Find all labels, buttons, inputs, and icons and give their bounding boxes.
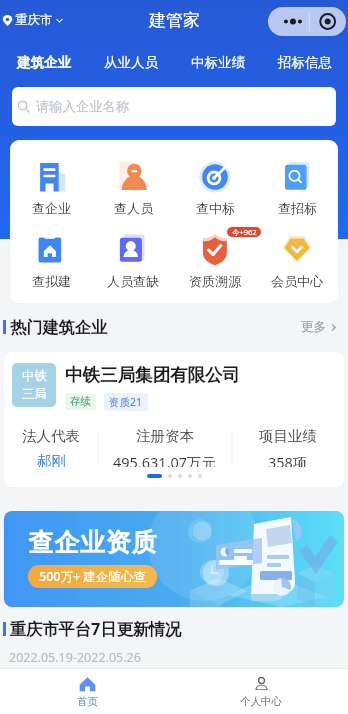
button[interactable]: 中铁 bbox=[4, 352, 344, 487]
button[interactable]: 重庆市 bbox=[2, 12, 63, 28]
staticText: 重庆市平台7日更新情况 bbox=[10, 618, 182, 640]
staticText: 重庆市 bbox=[15, 12, 53, 28]
button[interactable]: 更多 bbox=[301, 319, 338, 335]
staticText: 查企业 bbox=[32, 200, 71, 216]
button[interactable]: 查企业资质 bbox=[4, 511, 344, 607]
staticText: 500万+ 建企随心查 bbox=[39, 568, 146, 585]
button[interactable]: More options bbox=[268, 7, 346, 36]
staticText: 2022.05.19-2022.05.26 bbox=[9, 649, 141, 666]
staticText: 个人中心 bbox=[240, 695, 282, 708]
staticText: 资质溯源 bbox=[189, 273, 241, 289]
staticText: 今+962 bbox=[232, 227, 257, 237]
button[interactable]: 查拟建 bbox=[10, 234, 92, 289]
staticText: 495,631.07万元 bbox=[113, 452, 217, 467]
staticText: 从业人员 bbox=[104, 54, 158, 71]
button[interactable]: 今+962 bbox=[174, 234, 256, 289]
staticText: 查中标 bbox=[196, 200, 235, 216]
button[interactable]: 招标信息 bbox=[261, 40, 348, 84]
staticText: 中铁 bbox=[22, 368, 47, 384]
button[interactable]: 建筑企业 bbox=[0, 40, 87, 84]
staticText: 中铁三局集团有限公司 bbox=[65, 364, 240, 386]
button[interactable]: 中标业绩 bbox=[174, 40, 261, 84]
staticText: 热门建筑企业 bbox=[10, 317, 108, 337]
staticText: 查企业资质 bbox=[28, 527, 157, 558]
staticText: 查人员 bbox=[114, 200, 153, 216]
button[interactable]: 查企业 bbox=[10, 161, 92, 216]
staticText: 首页 bbox=[77, 695, 98, 708]
staticText: 会员中心 bbox=[271, 273, 323, 289]
staticText: 郝刚 bbox=[37, 452, 66, 467]
button[interactable]: 查中标 bbox=[174, 161, 256, 216]
button[interactable]: 请输入企业名称 bbox=[12, 87, 336, 126]
button[interactable]: 会员中心 bbox=[256, 234, 338, 289]
staticText: 注册资本 bbox=[136, 427, 194, 445]
button[interactable]: 人员查缺 bbox=[92, 234, 174, 289]
staticText: 法人代表 bbox=[22, 427, 80, 445]
button[interactable]: 查人员 bbox=[92, 161, 174, 216]
staticText: 项目业绩 bbox=[259, 427, 317, 445]
staticText: 存续 bbox=[70, 395, 91, 408]
staticText: 三局 bbox=[22, 386, 47, 402]
staticText: 查拟建 bbox=[32, 273, 71, 289]
staticText: 查招标 bbox=[278, 200, 317, 216]
staticText: 请输入企业名称 bbox=[36, 98, 130, 115]
button[interactable]: 查招标 bbox=[256, 161, 338, 216]
button[interactable]: 个人中心 bbox=[174, 669, 348, 714]
button[interactable]: 首页 bbox=[0, 669, 174, 714]
staticText: 资质21 bbox=[109, 395, 143, 409]
staticText: 建管家 bbox=[149, 10, 200, 31]
staticText: 更多 bbox=[301, 319, 326, 335]
staticText: 中标业绩 bbox=[191, 54, 245, 71]
button[interactable]: 从业人员 bbox=[87, 40, 174, 84]
staticText: 招标信息 bbox=[278, 54, 332, 71]
staticText: 人员查缺 bbox=[107, 273, 159, 289]
staticText: 358项 bbox=[268, 452, 308, 467]
staticText: 建筑企业 bbox=[17, 54, 71, 71]
